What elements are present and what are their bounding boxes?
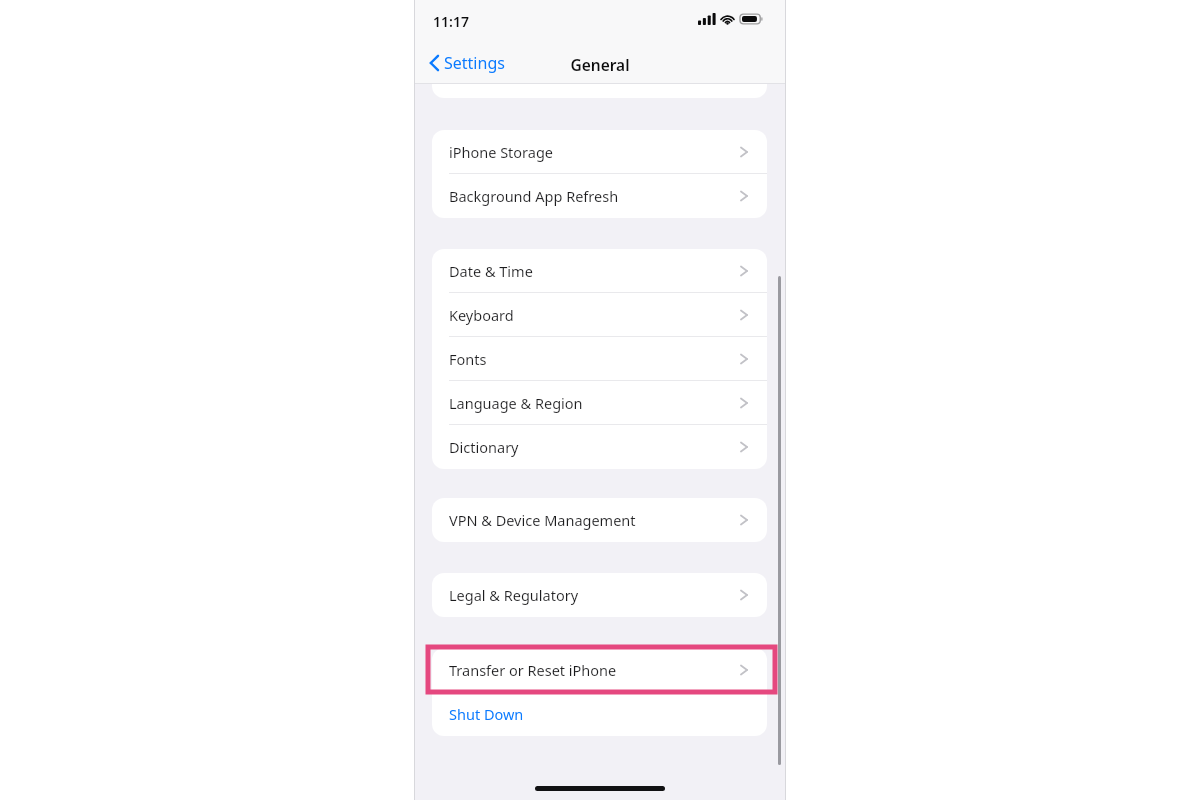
staticText: VPN & Device Management: [449, 510, 636, 530]
button[interactable]: VPN & Device Management: [432, 498, 767, 542]
staticText: Language & Region: [449, 393, 583, 413]
button[interactable]: Shut Down: [432, 692, 767, 736]
button[interactable]: iPhone Storage: [432, 130, 767, 174]
staticText: General: [415, 54, 785, 75]
staticText: Dictionary: [449, 437, 519, 457]
staticText: Keyboard: [449, 305, 514, 325]
staticText: Transfer or Reset iPhone: [449, 660, 617, 680]
staticText: Legal & Regulatory: [449, 585, 579, 605]
staticText: Background App Refresh: [449, 186, 619, 206]
button[interactable]: Background App Refresh: [432, 174, 767, 218]
staticText: Settings: [444, 52, 505, 74]
button[interactable]: Language & Region: [432, 381, 767, 425]
button[interactable]: Settings: [426, 50, 508, 76]
button[interactable]: Dictionary: [432, 425, 767, 469]
button[interactable]: Date & Time: [432, 249, 767, 293]
staticText: Date & Time: [449, 261, 533, 281]
staticText: iPhone Storage: [449, 142, 554, 162]
staticText: Shut Down: [449, 704, 524, 724]
button[interactable]: Transfer or Reset iPhone: [432, 648, 767, 692]
button[interactable]: Keyboard: [432, 293, 767, 337]
button[interactable]: Fonts: [432, 337, 767, 381]
staticText: Fonts: [449, 349, 487, 369]
button[interactable]: Legal & Regulatory: [432, 573, 767, 617]
staticText: 11:17: [433, 12, 469, 31]
